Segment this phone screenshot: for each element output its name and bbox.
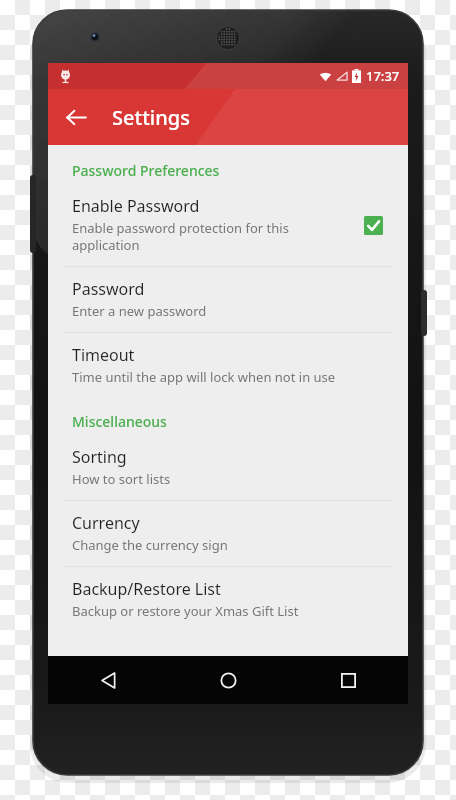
button[interactable]: Back [56, 97, 96, 137]
staticText: Sorting [72, 446, 127, 468]
button[interactable]: Currency [48, 501, 408, 566]
staticText: Backup or restore your Xmas Gift List [72, 602, 299, 620]
button[interactable]: Home [168, 656, 288, 704]
staticText: Password Preferences [72, 161, 220, 180]
staticText: Timeout [72, 344, 135, 366]
button[interactable]: Backup/Restore List [48, 567, 408, 632]
button[interactable]: Password [48, 267, 408, 332]
button[interactable]: Sorting [48, 435, 408, 500]
staticText: How to sort lists [72, 470, 171, 488]
staticText: 17:37 [366, 67, 400, 85]
staticText: Enable password protection for this appl… [72, 219, 289, 254]
button[interactable]: Back [48, 656, 168, 704]
staticText: Enable Password [72, 195, 200, 217]
button[interactable]: Enable Password [48, 184, 408, 266]
staticText: Enter a new password [72, 302, 207, 320]
staticText: Currency [72, 512, 140, 534]
button[interactable]: Enable Password toggle [356, 208, 390, 242]
button[interactable]: Timeout [48, 333, 408, 398]
button[interactable]: Recent apps [288, 656, 408, 704]
staticText: Backup/Restore List [72, 578, 221, 600]
staticText: Settings [112, 104, 190, 131]
staticText: Password [72, 278, 145, 300]
staticText: Miscellaneous [72, 412, 167, 431]
staticText: Change the currency sign [72, 536, 228, 554]
staticText: Time until the app will lock when not in… [72, 368, 336, 386]
